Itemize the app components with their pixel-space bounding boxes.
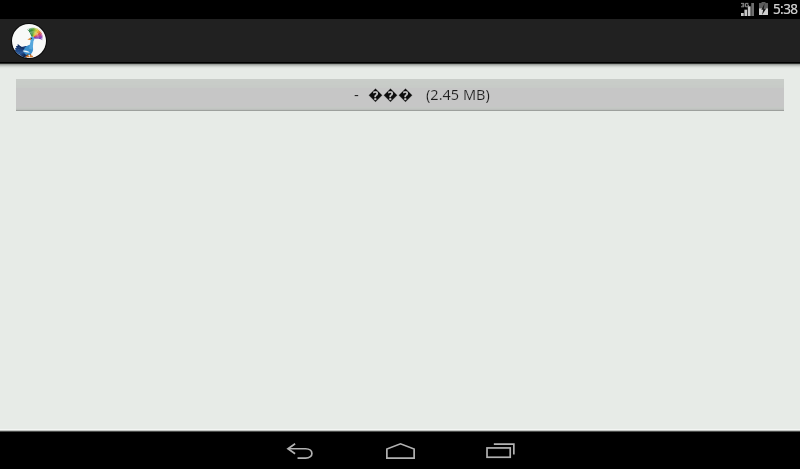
staticText: (2.45 MB) [426, 84, 490, 104]
staticText: - [354, 84, 359, 104]
button[interactable]: Back [264, 432, 336, 469]
button[interactable]: Home [364, 432, 436, 469]
button[interactable]: App icon [11, 23, 47, 59]
staticText: 5:38 [773, 0, 798, 18]
button[interactable]: Recent apps [464, 432, 536, 469]
button[interactable]: - [16, 79, 784, 111]
staticText: ��� [368, 84, 414, 104]
